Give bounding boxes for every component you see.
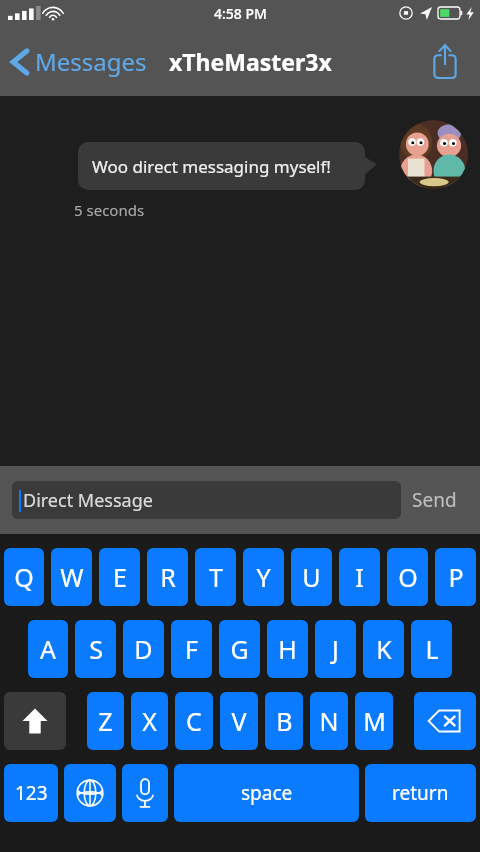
- button[interactable]: V: [220, 692, 258, 750]
- staticText: W: [60, 560, 84, 594]
- button[interactable]: Direct Message: [12, 481, 401, 519]
- staticText: F: [185, 632, 198, 666]
- staticText: T: [209, 560, 223, 594]
- button[interactable]: L: [411, 620, 452, 678]
- staticText: Woo direct messaging myself!: [92, 155, 331, 178]
- staticText: B: [276, 704, 293, 738]
- staticText: L: [425, 632, 439, 666]
- staticText: space: [241, 780, 293, 806]
- staticText: D: [134, 632, 153, 666]
- staticText: G: [230, 632, 249, 666]
- staticText: Messages: [35, 45, 147, 78]
- staticText: C: [186, 704, 202, 738]
- button[interactable]: 123: [4, 764, 58, 822]
- button[interactable]: H: [267, 620, 308, 678]
- staticText: O: [398, 560, 418, 594]
- button[interactable]: Shift: [4, 692, 66, 750]
- button[interactable]: J: [315, 620, 356, 678]
- staticText: Q: [14, 560, 34, 594]
- button[interactable]: E: [99, 548, 140, 606]
- staticText: N: [319, 704, 339, 738]
- button[interactable]: D: [123, 620, 164, 678]
- staticText: X: [142, 704, 157, 738]
- staticText: Send: [412, 487, 457, 513]
- button[interactable]: F: [171, 620, 212, 678]
- button[interactable]: S: [75, 620, 116, 678]
- button[interactable]: Profile picture: [399, 120, 468, 189]
- button[interactable]: A: [28, 620, 68, 678]
- staticText: V: [231, 704, 247, 738]
- button[interactable]: Share: [422, 38, 468, 84]
- button[interactable]: Woo direct messaging myself!: [78, 142, 365, 190]
- staticText: xTheMaster3x: [169, 46, 332, 77]
- staticText: S: [89, 632, 103, 666]
- button[interactable]: Send: [401, 481, 468, 519]
- staticText: P: [448, 560, 464, 594]
- button[interactable]: I: [339, 548, 380, 606]
- staticText: J: [332, 632, 339, 666]
- staticText: I: [355, 560, 364, 594]
- staticText: R: [160, 560, 176, 594]
- button[interactable]: return: [365, 764, 476, 822]
- button[interactable]: Z: [87, 692, 124, 750]
- button[interactable]: B: [265, 692, 303, 750]
- button[interactable]: X: [131, 692, 168, 750]
- staticText: Z: [98, 704, 113, 738]
- button[interactable]: R: [147, 548, 188, 606]
- button[interactable]: N: [310, 692, 348, 750]
- button[interactable]: P: [435, 548, 476, 606]
- staticText: 5 seconds: [74, 200, 145, 220]
- button[interactable]: K: [363, 620, 404, 678]
- staticText: 4:58 PM: [214, 4, 267, 23]
- button[interactable]: Change keyboard language: [64, 764, 116, 822]
- button[interactable]: space: [174, 764, 359, 822]
- button[interactable]: Q: [4, 548, 44, 606]
- staticText: U: [302, 560, 321, 594]
- button[interactable]: M: [355, 692, 393, 750]
- button[interactable]: C: [175, 692, 213, 750]
- button[interactable]: G: [219, 620, 260, 678]
- button[interactable]: Y: [243, 548, 284, 606]
- button[interactable]: O: [387, 548, 428, 606]
- button[interactable]: Messages: [0, 39, 155, 84]
- button[interactable]: Dictation: [122, 764, 168, 822]
- staticText: Y: [256, 560, 271, 594]
- button[interactable]: Backspace: [414, 692, 476, 750]
- button[interactable]: W: [51, 548, 92, 606]
- staticText: A: [40, 632, 56, 666]
- staticText: E: [113, 560, 127, 594]
- staticText: 123: [15, 780, 48, 806]
- staticText: K: [376, 632, 392, 666]
- staticText: M: [363, 704, 386, 738]
- staticText: Direct Message: [23, 488, 153, 513]
- staticText: return: [392, 780, 449, 806]
- button[interactable]: T: [195, 548, 236, 606]
- staticText: H: [278, 632, 297, 666]
- button[interactable]: U: [291, 548, 332, 606]
